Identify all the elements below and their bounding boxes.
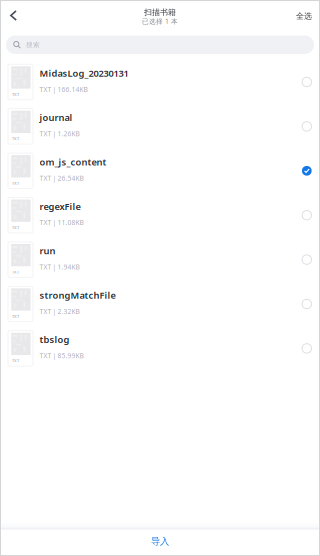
staticText: run <box>39 244 55 257</box>
staticText: TXT | 11.08KB <box>39 218 83 227</box>
staticText: regexFile <box>39 200 80 212</box>
staticText: TXT <box>12 314 19 319</box>
staticText: TXT | 26.54KB <box>39 174 83 183</box>
staticText: tbslog <box>39 333 69 346</box>
staticText: 搜索 <box>26 41 40 49</box>
staticText: journal <box>39 111 72 124</box>
staticText: TXT | 85.99KB <box>39 351 83 360</box>
staticText: 全选 <box>296 11 312 21</box>
button[interactable]: TXT <box>0 237 320 282</box>
staticText: TXT | 1.94KB <box>39 262 79 271</box>
staticText: 已选择 1 本 <box>142 17 178 26</box>
staticText: TXT <box>12 269 19 275</box>
staticText: TXT | 2.32KB <box>39 307 79 316</box>
staticText: TXT | 166.14KB <box>39 85 87 94</box>
button[interactable]: TXT <box>0 282 320 326</box>
staticText: 导入 <box>151 536 169 547</box>
staticText: strongMatchFile <box>39 289 115 301</box>
staticText: MidasLog_20230131 <box>39 67 128 79</box>
button[interactable]: TXT <box>0 104 320 149</box>
staticText: TXT | 1.26KB <box>39 129 79 138</box>
staticText: om_js_content <box>39 156 106 168</box>
button[interactable]: TXT <box>0 326 320 371</box>
button[interactable]: Back <box>0 0 34 29</box>
staticText: TXT <box>12 180 19 186</box>
staticText: TXT <box>12 92 19 97</box>
button[interactable]: 全选 <box>288 0 320 29</box>
button[interactable]: TXT <box>0 60 320 104</box>
staticText: TXT <box>12 225 19 230</box>
button[interactable]: TXT <box>0 149 320 193</box>
staticText: TXT <box>12 358 19 363</box>
button[interactable]: TXT <box>0 193 320 237</box>
staticText: TXT <box>12 136 19 141</box>
button[interactable]: 导入 <box>0 529 320 553</box>
staticText: 扫描书籍 <box>144 7 176 17</box>
